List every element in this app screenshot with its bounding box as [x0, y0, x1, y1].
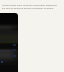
staticText: Lorem ipsum dolor sit amet consectetur a… [2, 4, 59, 10]
